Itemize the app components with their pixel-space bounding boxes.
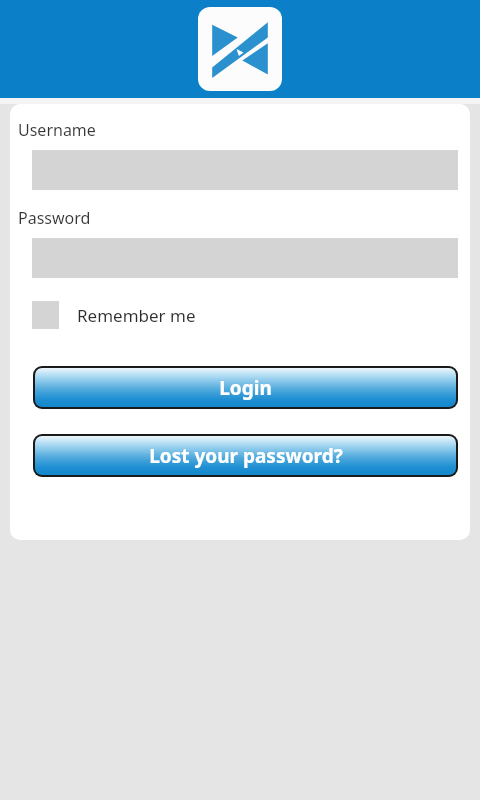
staticText: Username	[18, 119, 96, 141]
button[interactable]: Login	[33, 366, 458, 409]
staticText: Lost your password?	[149, 443, 343, 469]
button[interactable]: Remember me	[32, 301, 196, 329]
staticText: Remember me	[77, 304, 196, 327]
staticText: Login	[219, 375, 272, 401]
staticText: Password	[18, 207, 91, 229]
button[interactable]: Lost your password?	[33, 434, 458, 477]
other: App logo	[198, 7, 282, 91]
